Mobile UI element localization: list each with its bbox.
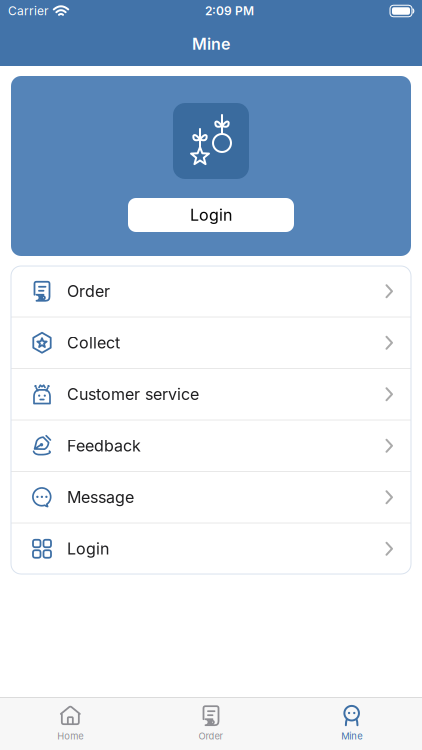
staticText: Home (57, 731, 83, 742)
button[interactable]: Collect (11, 317, 411, 368)
button[interactable] (173, 103, 249, 179)
button[interactable]: Home (0, 704, 141, 742)
staticText: Mine (341, 731, 362, 742)
staticText: Collect (67, 333, 120, 352)
button[interactable]: Mine (281, 704, 422, 742)
staticText: Mine (192, 35, 230, 53)
button[interactable]: Order (141, 704, 281, 742)
button[interactable]: Order (11, 266, 411, 316)
staticText: Carrier (8, 4, 49, 18)
staticText: Message (67, 488, 134, 507)
staticText: Login (67, 539, 109, 558)
button[interactable]: Login (128, 198, 294, 232)
button[interactable]: Login (11, 523, 411, 574)
staticText: Order (67, 282, 110, 301)
staticText: Login (190, 206, 232, 224)
button[interactable]: Feedback (11, 420, 411, 471)
staticText: Feedback (67, 436, 141, 455)
button[interactable]: Customer service (11, 369, 411, 419)
staticText: 2:09 PM (205, 4, 254, 18)
staticText: Order (198, 731, 223, 742)
staticText: Customer service (67, 385, 199, 404)
button[interactable]: Message (11, 472, 411, 522)
